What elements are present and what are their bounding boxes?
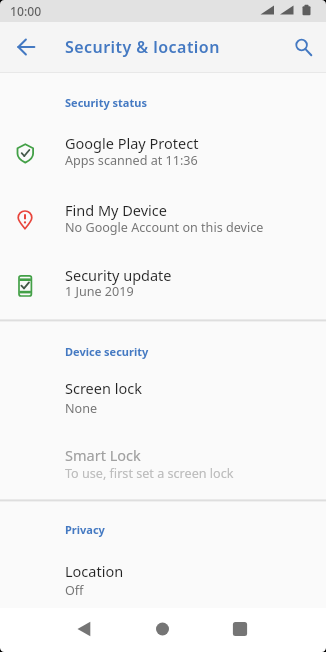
button[interactable]: Screen lock: [0, 364, 326, 428]
button[interactable]: Smart Lock: [0, 430, 326, 496]
staticText: Device security: [65, 344, 149, 359]
button[interactable]: [60, 606, 108, 652]
staticText: Security & location: [65, 36, 220, 58]
staticText: Smart Lock: [65, 445, 141, 465]
button[interactable]: [279, 23, 326, 71]
staticText: Google Play Protect: [65, 133, 199, 153]
staticText: To use, first set a screen lock: [65, 465, 234, 482]
staticText: None: [65, 400, 98, 417]
staticText: Privacy: [65, 522, 105, 537]
staticText: 1 June 2019: [65, 283, 134, 300]
staticText: Location: [65, 561, 124, 581]
button[interactable]: [138, 606, 186, 652]
button[interactable]: [2, 23, 50, 71]
button[interactable]: Google Play Protect: [0, 120, 326, 186]
staticText: Apps scanned at 11:36: [65, 152, 198, 169]
staticText: 10:00: [10, 3, 42, 20]
staticText: Find My Device: [65, 200, 167, 220]
button[interactable]: [216, 606, 264, 652]
button[interactable]: Location: [0, 546, 326, 609]
staticText: Off: [65, 582, 84, 599]
staticText: Security status: [65, 95, 147, 110]
staticText: No Google Account on this device: [65, 219, 264, 236]
staticText: Security update: [65, 265, 172, 285]
staticText: Screen lock: [65, 378, 142, 398]
button[interactable]: Security update: [0, 252, 326, 320]
button[interactable]: Find My Device: [0, 188, 326, 253]
